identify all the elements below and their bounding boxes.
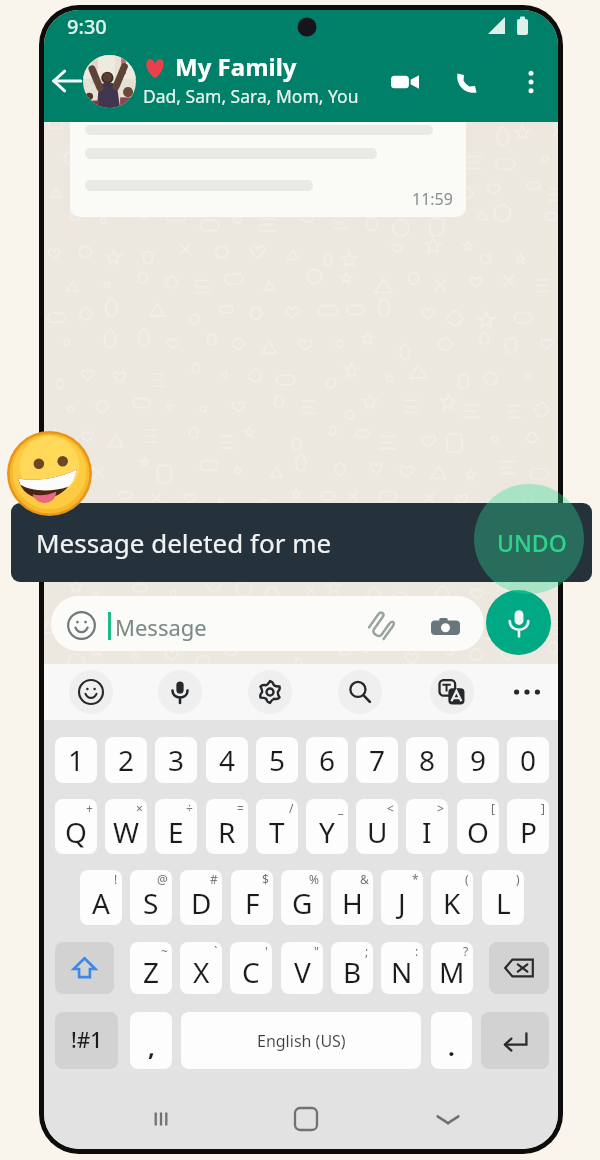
staticText: & [360,871,369,887]
button[interactable]: Back [426,1097,470,1141]
button[interactable]: Voice call [444,59,490,105]
button[interactable]: E [155,799,197,854]
staticText: W [113,813,140,851]
button[interactable]: M [431,942,473,994]
staticText: 0 [520,741,537,779]
button[interactable]: K [431,870,473,925]
staticText: B [343,953,362,991]
button[interactable]: Keyboard settings [248,670,292,714]
button[interactable]: Message [51,596,484,651]
button[interactable]: G [281,870,323,925]
staticText: > [437,800,444,816]
staticText: M [439,953,465,991]
staticText: % [309,871,319,887]
button[interactable]: X [180,942,222,994]
button[interactable]: Y [306,799,348,854]
staticText: × [136,800,143,816]
button[interactable]: 1 [55,737,97,783]
button[interactable]: B [331,942,373,994]
staticText: 1 [68,741,85,779]
button[interactable]: Voice input [158,670,202,714]
button[interactable]: N [381,942,423,994]
staticText: @ [157,871,168,887]
button[interactable]: 0 [507,737,549,783]
staticText: ! [114,871,118,887]
staticText: I [422,813,432,851]
button[interactable]: Translate [430,670,474,714]
staticText: N [391,953,413,991]
button[interactable]: C [230,942,272,994]
staticText: C [242,953,260,991]
button[interactable]: U [356,799,398,854]
button[interactable]: 2 [105,737,147,783]
staticText: / [289,800,294,816]
staticText: J [398,884,406,922]
button[interactable]: Z [130,942,172,994]
button[interactable]: Enter [481,1012,549,1069]
button[interactable]: 6 [306,737,348,783]
button[interactable]: Group photo [83,55,136,108]
staticText: * [412,871,419,887]
button[interactable]: Q [55,799,97,854]
staticText: G [292,884,313,922]
button[interactable]: !#1 [55,1012,118,1069]
button[interactable]: Attach [364,608,400,644]
staticText: 11:59 [412,188,453,210]
staticText: 4 [219,741,236,779]
staticText: ; [365,943,369,959]
staticText: + [86,800,93,816]
staticText: V [294,953,311,991]
button[interactable]: English (US) [181,1012,421,1069]
button[interactable]: More [505,670,549,714]
button[interactable]: O [457,799,499,854]
button[interactable]: L [482,870,524,925]
button[interactable]: I [406,799,448,854]
button[interactable]: Search [338,670,382,714]
button[interactable]: Home [284,1097,328,1141]
button[interactable]: Shift [55,942,114,994]
button[interactable]: F [231,870,273,925]
button[interactable]: Back [44,58,90,104]
button[interactable]: 4 [206,737,248,783]
staticText: < [387,800,394,816]
button[interactable]: R [206,799,248,854]
button[interactable]: P [507,799,549,854]
button[interactable]: Video call [382,59,428,105]
button[interactable]: D [180,870,222,925]
button[interactable]: 7 [356,737,398,783]
staticText: ` [214,943,218,959]
button[interactable]: V [281,942,323,994]
button[interactable]: A [80,870,122,925]
staticText: P [520,813,537,851]
staticText: Z [143,953,160,991]
staticText: 9 [470,741,487,779]
staticText: ÷ [186,800,193,816]
button[interactable]: UNDO [491,519,573,566]
button[interactable]: . [431,1012,472,1069]
button[interactable]: Recent apps [139,1097,183,1141]
button[interactable]: 8 [406,737,448,783]
button[interactable]: S [130,870,172,925]
staticText: 6 [319,741,336,779]
button[interactable]: , [130,1012,172,1069]
button[interactable]: 5 [256,737,298,783]
button[interactable]: Record voice message [486,590,551,655]
button[interactable]: H [331,870,373,925]
button[interactable]: T [256,799,298,854]
button[interactable]: 3 [155,737,197,783]
button[interactable]: Camera [427,609,463,645]
staticText: K [443,884,461,922]
staticText: X [193,953,210,991]
button[interactable]: Backspace [489,942,549,994]
staticText: _ [338,800,344,816]
staticText: F [245,884,260,922]
staticText: " [314,943,319,959]
staticText: . [448,1030,455,1063]
button[interactable]: 9 [457,737,499,783]
staticText: T [269,813,285,851]
button[interactable]: W [105,799,147,854]
staticText: : [415,943,419,959]
button[interactable]: J [381,870,423,925]
button[interactable]: Emoji [69,670,113,714]
button[interactable]: More options [508,59,554,105]
